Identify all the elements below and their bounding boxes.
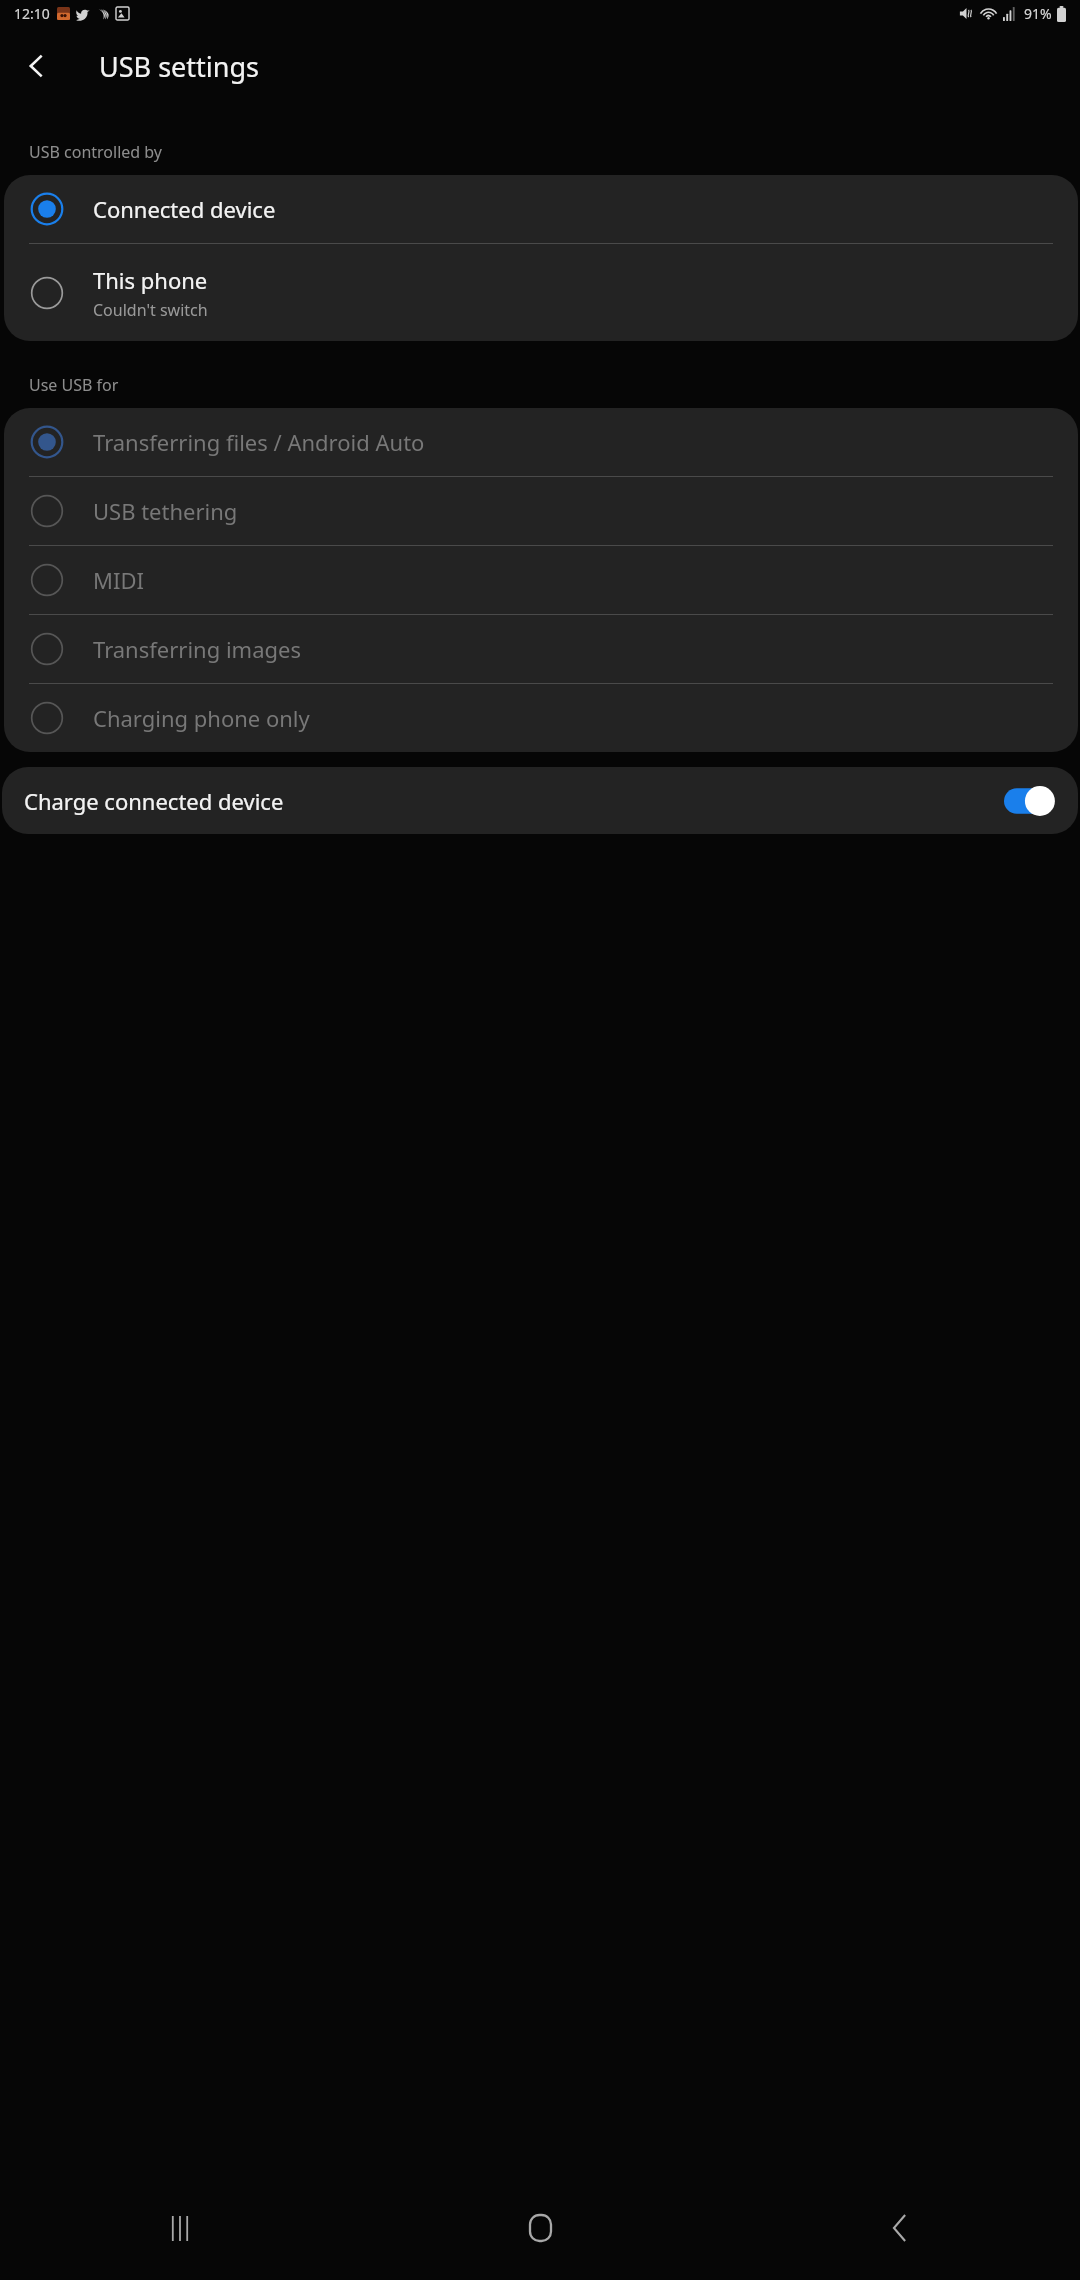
button[interactable]: Transferring files / Android Auto xyxy=(4,408,1078,476)
staticText: This phone xyxy=(93,265,208,295)
staticText: MIDI xyxy=(93,565,144,595)
staticText: 91% xyxy=(1024,4,1052,23)
button[interactable]: Connected device xyxy=(4,175,1078,243)
button[interactable]: Recent apps xyxy=(0,2176,360,2280)
staticText: Transferring files / Android Auto xyxy=(93,427,425,457)
button[interactable]: This phone xyxy=(4,244,1078,341)
staticText: Couldn't switch xyxy=(93,299,208,321)
staticText: Charging phone only xyxy=(93,703,310,733)
staticText: 12:10 xyxy=(14,4,50,23)
button[interactable]: Home xyxy=(360,2176,720,2280)
button[interactable]: Charge connected device xyxy=(2,767,1078,834)
staticText: Use USB for xyxy=(29,374,119,396)
staticText: USB settings xyxy=(99,48,259,85)
button[interactable]: MIDI xyxy=(4,546,1078,614)
button[interactable]: USB tethering xyxy=(4,477,1078,545)
staticText: Charge connected device xyxy=(24,786,284,816)
staticText: Transferring images xyxy=(93,634,301,664)
staticText: Connected device xyxy=(93,194,276,224)
button[interactable]: Back xyxy=(720,2176,1080,2280)
staticText: USB controlled by xyxy=(29,141,162,163)
button[interactable]: Navigate up xyxy=(10,39,64,93)
button[interactable]: Charging phone only xyxy=(4,684,1078,752)
button[interactable]: Transferring images xyxy=(4,615,1078,683)
staticText: USB tethering xyxy=(93,496,238,526)
